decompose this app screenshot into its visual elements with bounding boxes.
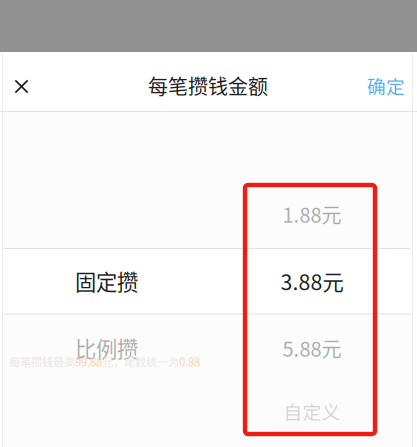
staticText: 元，尾数统一为	[102, 353, 179, 370]
staticText: 比例攒	[75, 333, 138, 363]
button[interactable]: Close	[0, 56, 48, 116]
staticText: 0.88	[179, 353, 200, 370]
staticText: 5.88元	[282, 333, 341, 362]
button[interactable]: 比例攒	[16, 315, 196, 381]
staticText: 确定	[367, 72, 405, 99]
button[interactable]: 自定义	[222, 378, 402, 444]
staticText: 每笔攒钱最高	[9, 353, 75, 370]
staticText: 自定义	[283, 397, 340, 424]
button[interactable]: 1.88元	[222, 181, 402, 247]
staticText: 固定攒	[75, 266, 138, 296]
button[interactable]: 3.88元	[222, 248, 402, 314]
staticText: 99.88	[75, 353, 102, 370]
staticText: 1.88元	[282, 199, 341, 228]
staticText: 3.88元	[280, 266, 343, 296]
button[interactable]: 固定攒	[16, 248, 196, 314]
button[interactable]: 5.88元	[222, 315, 402, 381]
button[interactable]: 确定	[353, 55, 417, 115]
staticText: 每笔攒钱金额	[148, 71, 268, 100]
